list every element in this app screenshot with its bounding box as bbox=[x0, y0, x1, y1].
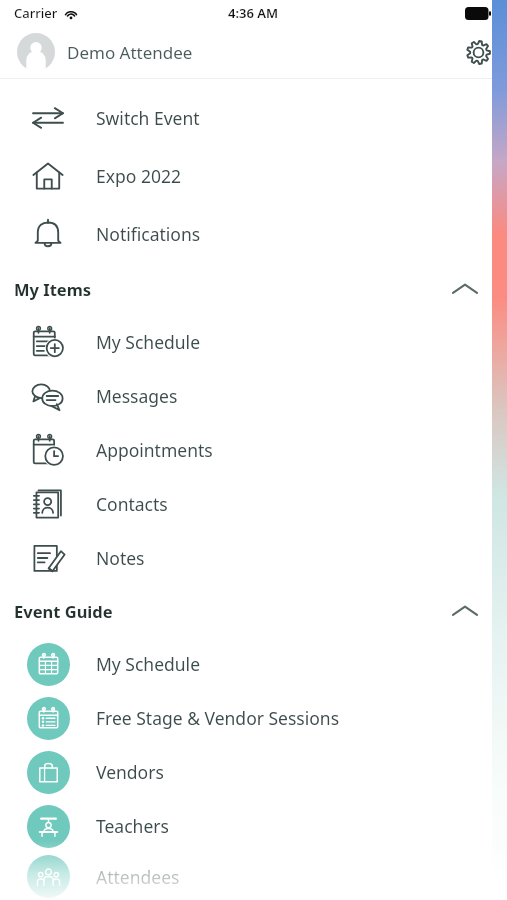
staticText: 4:36 AM bbox=[228, 4, 279, 22]
button[interactable]: Event Guide bbox=[0, 585, 507, 637]
button[interactable]: Appointments bbox=[0, 423, 507, 477]
button[interactable]: My Schedule bbox=[0, 315, 507, 369]
button[interactable]: Switch Event bbox=[0, 89, 507, 147]
staticText: Attendees bbox=[96, 865, 180, 889]
button[interactable]: Expo 2022 bbox=[0, 147, 507, 205]
button[interactable]: Teachers bbox=[0, 799, 507, 853]
button[interactable]: Vendors bbox=[0, 745, 507, 799]
staticText: Carrier bbox=[14, 4, 58, 22]
staticText: Expo 2022 bbox=[96, 164, 181, 188]
staticText: My Schedule bbox=[96, 330, 201, 354]
staticText: Vendors bbox=[96, 760, 164, 784]
button[interactable]: Demo Attendee bbox=[0, 26, 449, 78]
button[interactable]: Attendees bbox=[0, 853, 507, 900]
staticText: Teachers bbox=[96, 814, 169, 838]
staticText: Messages bbox=[96, 384, 178, 408]
button[interactable]: Settings bbox=[449, 26, 507, 78]
button[interactable]: My Schedule bbox=[0, 637, 507, 691]
staticText: Appointments bbox=[96, 438, 213, 462]
staticText: Notes bbox=[96, 546, 145, 570]
staticText: My Schedule bbox=[96, 652, 201, 676]
staticText: Event Guide bbox=[14, 600, 113, 622]
staticText: Free Stage & Vendor Sessions bbox=[96, 706, 340, 730]
button[interactable]: Messages bbox=[0, 369, 507, 423]
staticText: My Items bbox=[14, 278, 92, 300]
button[interactable]: Notes bbox=[0, 531, 507, 585]
staticText: Contacts bbox=[96, 492, 168, 516]
button[interactable]: Contacts bbox=[0, 477, 507, 531]
staticText: Switch Event bbox=[96, 106, 200, 130]
button[interactable]: My Items bbox=[0, 263, 507, 315]
button[interactable]: Notifications bbox=[0, 205, 507, 263]
button[interactable]: Free Stage & Vendor Sessions bbox=[0, 691, 507, 745]
staticText: Demo Attendee bbox=[67, 41, 193, 64]
staticText: Notifications bbox=[96, 222, 201, 246]
